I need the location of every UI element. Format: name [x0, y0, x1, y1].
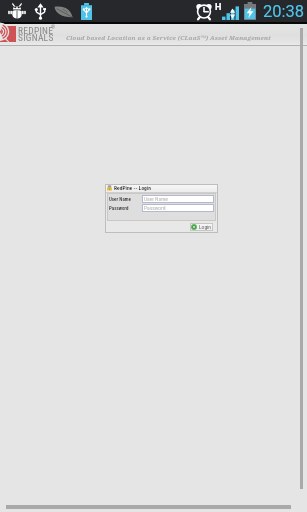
staticText: Password — [144, 205, 166, 211]
staticText: SIGNALS — [18, 32, 54, 43]
button[interactable]: Password — [142, 204, 214, 212]
staticText: Cloud based Location as a Service (CLaaS… — [66, 34, 271, 42]
staticText: RedPine -- Login — [114, 185, 151, 191]
staticText: User Name — [144, 196, 168, 202]
staticText: H — [215, 2, 222, 13]
staticText: User Name — [109, 196, 131, 202]
staticText: Password — [109, 205, 129, 211]
staticText: ® — [51, 24, 55, 30]
staticText: 20:38 — [263, 2, 305, 21]
button[interactable]: Login — [190, 223, 213, 231]
staticText: Login — [199, 224, 212, 230]
staticText: REDPINE — [18, 25, 54, 36]
button[interactable]: User Name — [142, 195, 214, 203]
